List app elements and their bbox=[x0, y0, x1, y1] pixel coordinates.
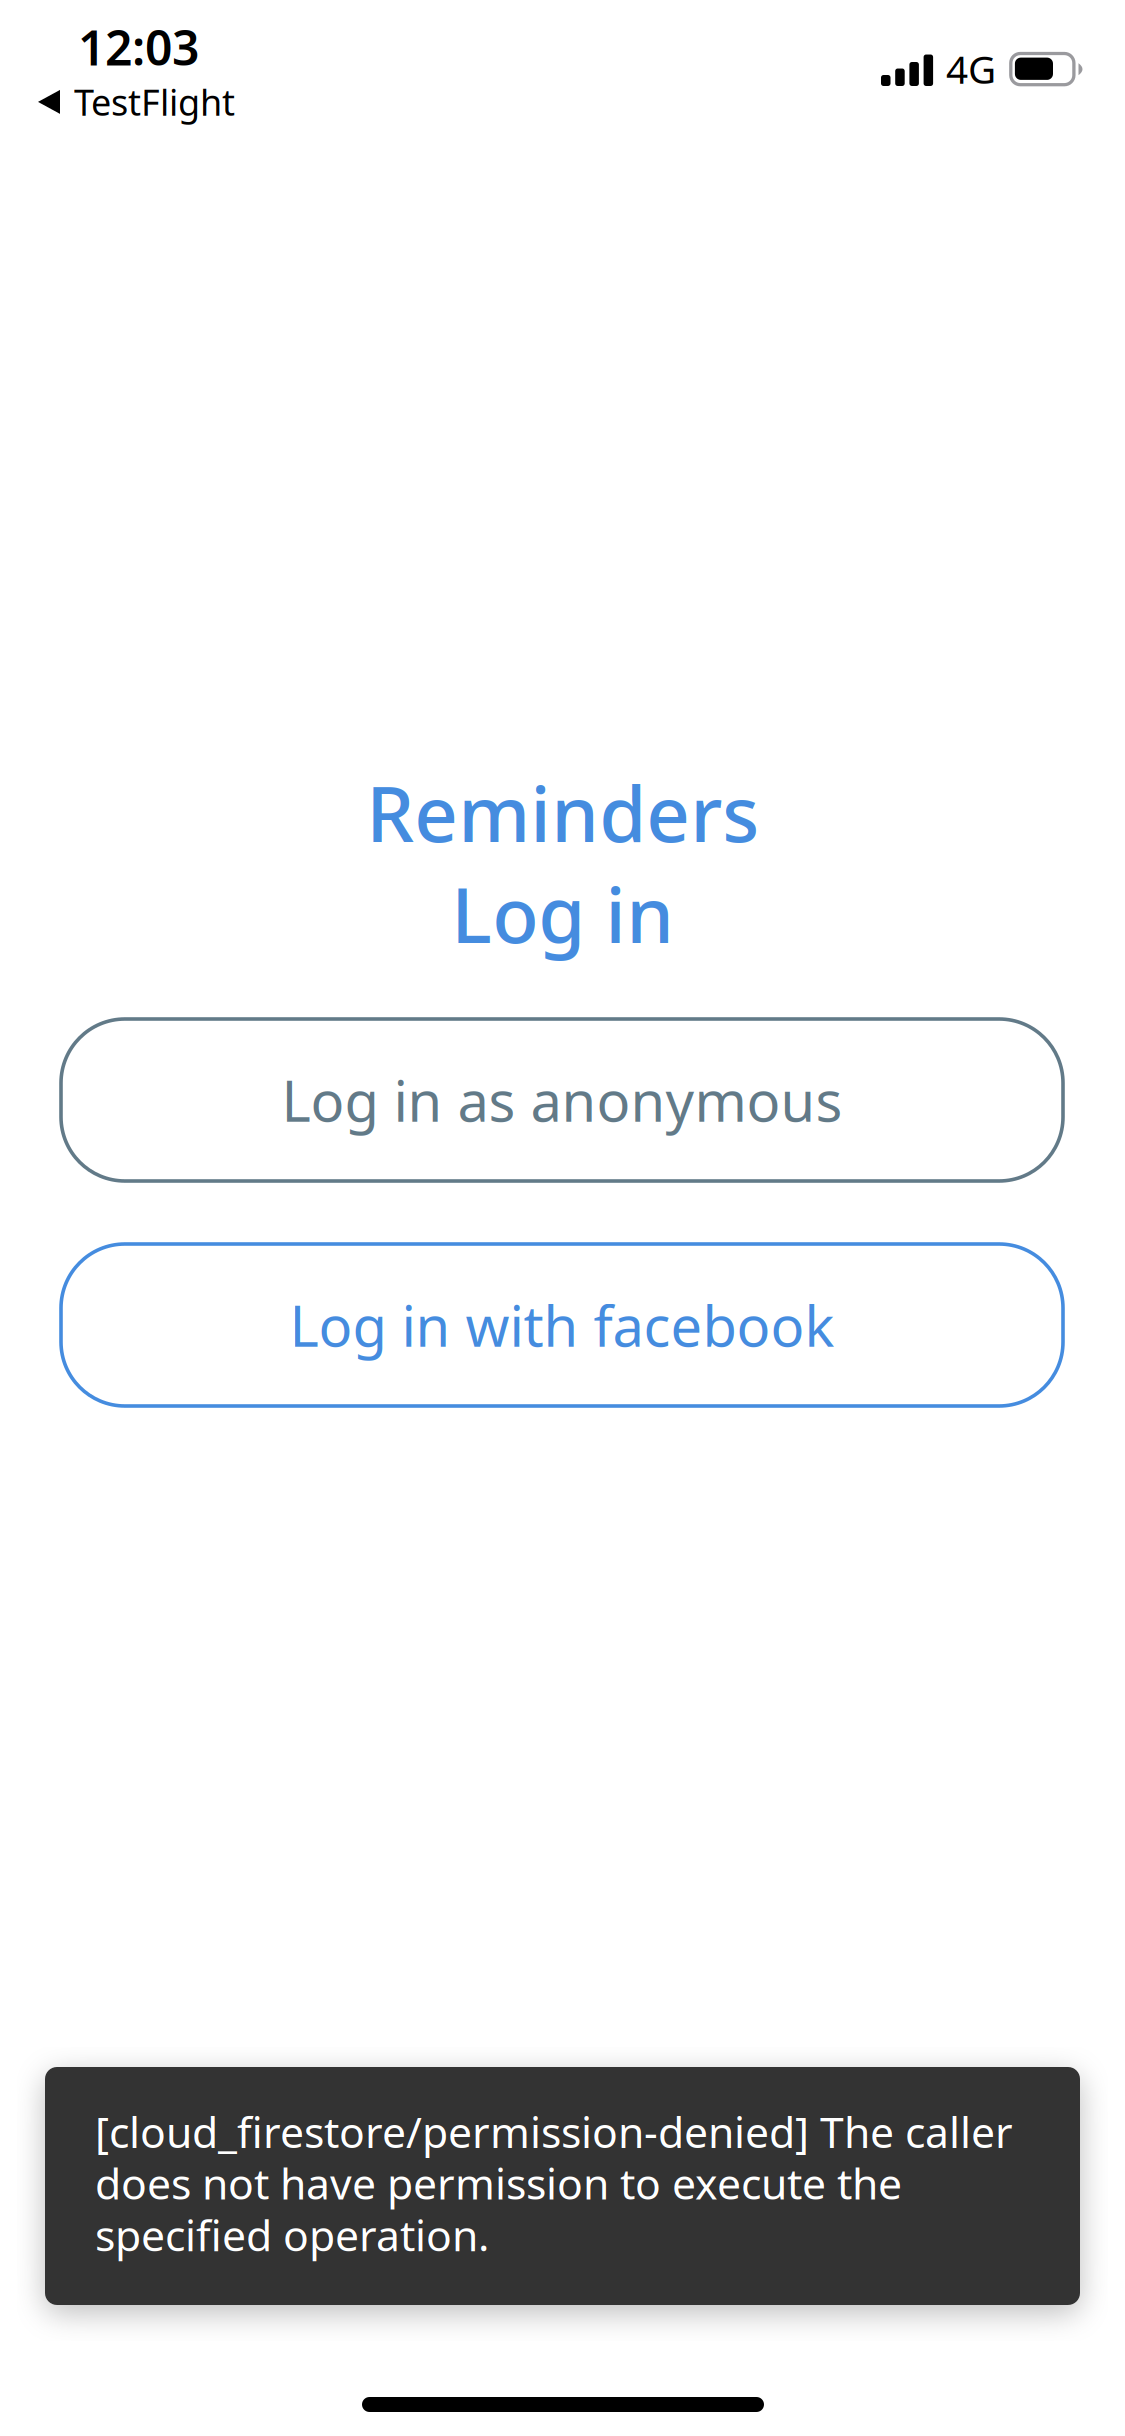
button[interactable]: Log in as anonymous bbox=[61, 1019, 1063, 1181]
staticText: [cloud_firestore/permission-denied] The … bbox=[95, 2103, 1013, 2263]
staticText: TestFlight bbox=[74, 78, 235, 126]
staticText: 4G bbox=[946, 43, 996, 94]
staticText: Reminders Log in bbox=[366, 762, 759, 964]
staticText: 12:03 bbox=[78, 15, 199, 79]
staticText: Log in as anonymous bbox=[281, 1063, 842, 1137]
staticText: Log in with facebook bbox=[289, 1288, 834, 1362]
button[interactable]: TestFlight bbox=[38, 78, 235, 126]
button[interactable]: Log in with facebook bbox=[61, 1244, 1063, 1406]
